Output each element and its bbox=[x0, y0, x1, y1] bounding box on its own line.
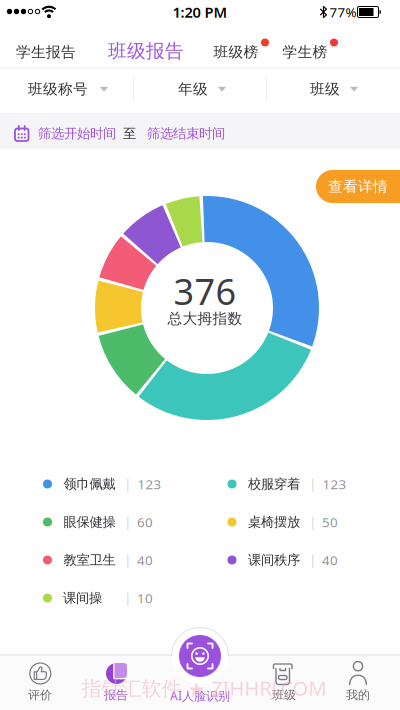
staticText: 班级榜 bbox=[213, 43, 258, 61]
staticText: | bbox=[124, 476, 131, 492]
staticText: 123 bbox=[322, 475, 346, 493]
button[interactable]: 查看详情 bbox=[316, 170, 400, 203]
staticText: 我的 bbox=[346, 688, 370, 702]
button[interactable]: 报告 bbox=[80, 654, 152, 710]
button[interactable]: 年级 bbox=[133, 68, 266, 113]
staticText: | bbox=[124, 552, 131, 568]
staticText: 筛选开始时间 bbox=[38, 125, 116, 142]
staticText: 年级 bbox=[178, 80, 208, 98]
button[interactable]: 班级称号 bbox=[0, 68, 133, 113]
staticText: 班级称号 bbox=[28, 80, 88, 98]
staticText: 课间操 bbox=[63, 590, 102, 606]
button[interactable]: 学生报告 bbox=[10, 30, 82, 68]
button[interactable]: 班级榜 bbox=[206, 30, 272, 68]
staticText: | bbox=[124, 514, 131, 530]
button[interactable]: 班级 bbox=[248, 654, 320, 710]
staticText: 查看详情 bbox=[328, 177, 388, 195]
button[interactable]: AI人脸识别 bbox=[164, 624, 236, 710]
staticText: 10 bbox=[137, 589, 153, 607]
button[interactable]: 班级报告 bbox=[96, 28, 196, 68]
staticText: 指针汇软件 ★ ZIHHRJ.COM bbox=[81, 675, 326, 701]
staticText: 40 bbox=[137, 551, 153, 569]
staticText: | bbox=[309, 514, 316, 530]
staticText: 60 bbox=[137, 513, 153, 531]
staticText: 123 bbox=[137, 475, 161, 493]
staticText: 班级 bbox=[310, 80, 340, 98]
staticText: 至 bbox=[123, 125, 136, 142]
staticText: 筛选结束时间 bbox=[147, 125, 225, 142]
staticText: 总大拇指数 bbox=[167, 309, 242, 327]
button[interactable]: 筛选开始时间 bbox=[0, 113, 400, 149]
staticText: 眼保健操 bbox=[63, 514, 115, 530]
staticText: 班级报告 bbox=[108, 39, 184, 62]
staticText: AI人脸识别 bbox=[170, 687, 230, 703]
staticText: 77% bbox=[329, 3, 356, 21]
staticText: 领巾佩戴 bbox=[63, 476, 115, 492]
staticText: 40 bbox=[322, 551, 338, 569]
staticText: | bbox=[309, 476, 316, 492]
staticText: 桌椅摆放 bbox=[248, 514, 300, 530]
button[interactable]: 我的 bbox=[322, 654, 394, 710]
staticText: 学生报告 bbox=[16, 43, 76, 61]
staticText: 376 bbox=[173, 267, 236, 315]
button[interactable]: 学生榜 bbox=[275, 30, 341, 68]
staticText: 校服穿着 bbox=[248, 476, 300, 492]
button[interactable]: 班级 bbox=[267, 68, 400, 113]
staticText: 报告 bbox=[104, 688, 128, 702]
staticText: | bbox=[309, 552, 316, 568]
staticText: 学生榜 bbox=[282, 43, 327, 61]
staticText: 1:20 PM bbox=[172, 2, 227, 22]
staticText: 50 bbox=[322, 513, 338, 531]
staticText: | bbox=[124, 590, 131, 606]
staticText: 评价 bbox=[28, 688, 52, 702]
staticText: 教室卫生 bbox=[63, 552, 115, 568]
button[interactable]: 评价 bbox=[4, 654, 76, 710]
staticText: 课间秩序 bbox=[248, 552, 300, 568]
staticText: 班级 bbox=[272, 688, 296, 702]
